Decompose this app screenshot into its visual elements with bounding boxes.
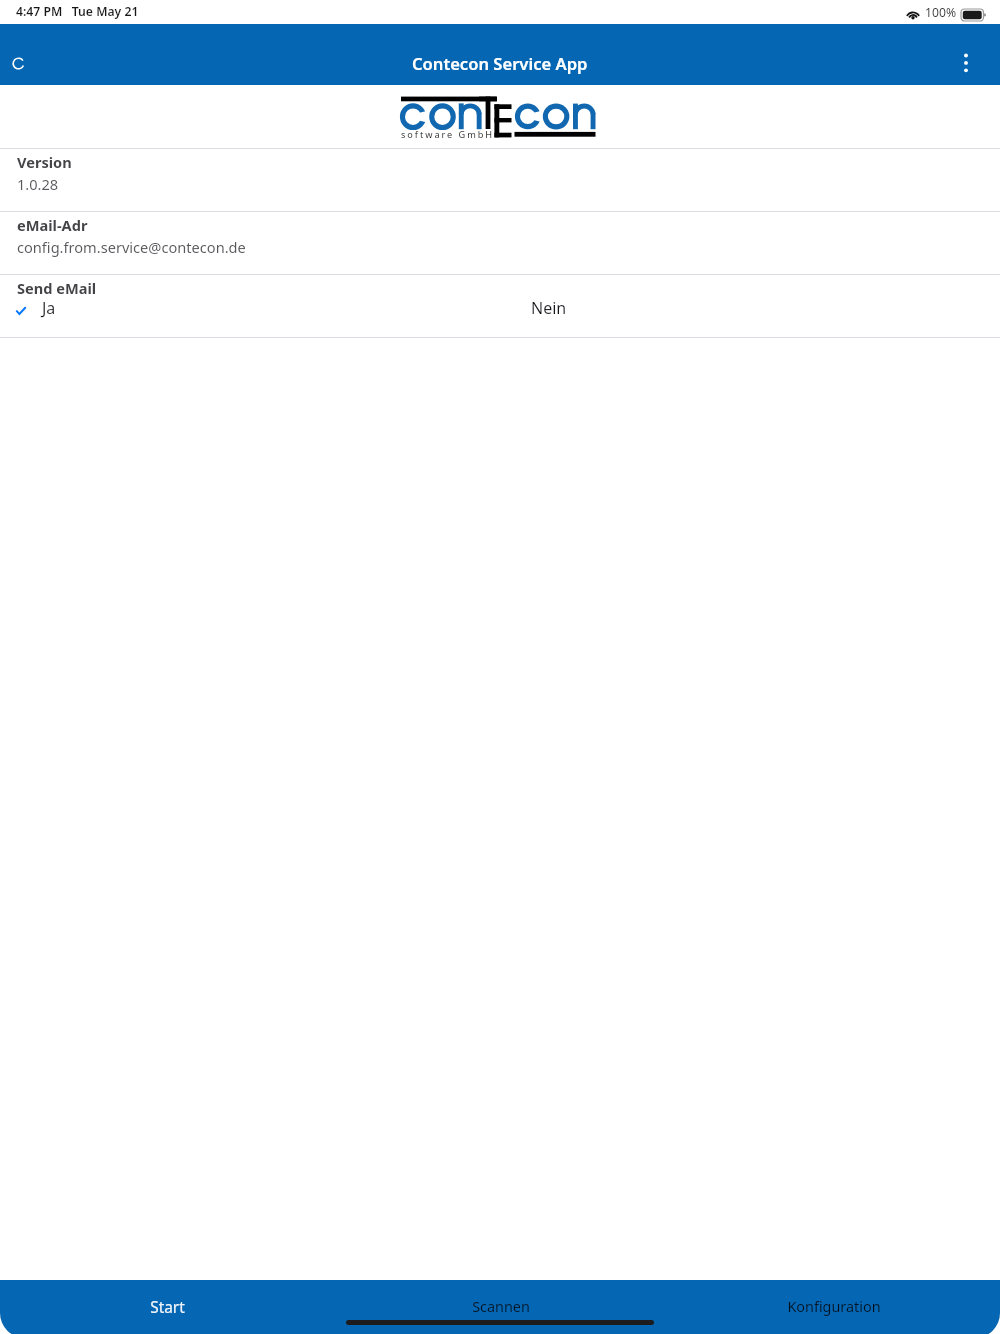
button[interactable]: Start <box>0 1280 334 1334</box>
button[interactable]: Ja <box>0 296 500 320</box>
staticText: 4:47 PM Tue May 21 <box>16 3 139 20</box>
button[interactable]: Version <box>0 148 1000 211</box>
staticText: Start <box>150 1297 185 1318</box>
button[interactable]: Nein <box>500 296 750 320</box>
staticText: eMail-Adr <box>17 215 88 235</box>
staticText: Send eMail <box>17 278 97 298</box>
staticText: software GmbH <box>401 128 495 141</box>
button[interactable]: Scannen <box>334 1280 667 1334</box>
button[interactable]: eMail-Adr <box>0 211 1000 274</box>
staticText: Version <box>17 152 72 172</box>
staticText: config.from.service@contecon.de <box>17 237 246 257</box>
staticText: Ja <box>42 297 56 319</box>
staticText: Contecon Service App <box>412 52 588 75</box>
staticText: 1.0.28 <box>17 174 59 194</box>
staticText: Scannen <box>472 1297 530 1317</box>
staticText: 100% <box>925 4 957 21</box>
button[interactable]: More options <box>952 49 980 77</box>
staticText: Nein <box>531 297 567 319</box>
staticText: Konfiguration <box>787 1297 881 1317</box>
button[interactable]: Konfiguration <box>667 1280 1000 1334</box>
button[interactable]: Refresh <box>4 49 32 77</box>
